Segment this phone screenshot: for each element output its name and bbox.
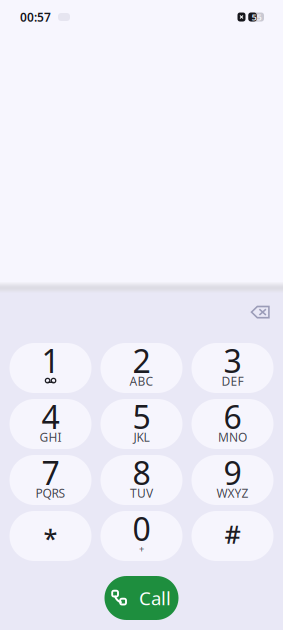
staticText: 4	[41, 395, 59, 438]
staticText: #	[224, 517, 240, 551]
button[interactable]: 0	[100, 511, 182, 561]
staticText: ABC	[129, 373, 153, 389]
staticText: 3	[223, 339, 241, 382]
staticText: 55	[251, 11, 261, 23]
staticText: PQRS	[35, 485, 65, 501]
staticText: 7	[41, 451, 59, 494]
button[interactable]: #	[191, 511, 273, 561]
button[interactable]: 2	[100, 343, 182, 393]
staticText: 2	[132, 339, 150, 382]
button[interactable]: 1	[9, 343, 91, 393]
button[interactable]: 6	[191, 399, 273, 449]
staticText: 5	[132, 395, 150, 438]
button[interactable]: 8	[100, 455, 182, 505]
staticText: Call	[139, 586, 171, 610]
staticText: 0	[132, 507, 150, 550]
staticText: WXYZ	[216, 485, 248, 501]
staticText: 8	[132, 451, 150, 494]
staticText: JKL	[133, 429, 149, 445]
staticText: 1	[41, 339, 59, 382]
button[interactable]: *	[9, 511, 91, 561]
staticText: 00:57	[20, 9, 51, 25]
staticText: 9	[223, 451, 241, 494]
staticText: 6	[223, 395, 241, 438]
staticText: *	[43, 521, 57, 555]
button[interactable]: Call	[104, 576, 178, 620]
button[interactable]: 7	[9, 455, 91, 505]
button[interactable]: 9	[191, 455, 273, 505]
staticText: TUV	[130, 485, 153, 501]
staticText: GHI	[39, 429, 61, 445]
button[interactable]: 5	[100, 399, 182, 449]
button[interactable]: 3	[191, 343, 273, 393]
button[interactable]: Delete	[239, 292, 281, 332]
staticText: MNO	[218, 429, 247, 445]
staticText: DEF	[221, 373, 243, 389]
staticText: +	[139, 543, 144, 555]
button[interactable]: 4	[9, 399, 91, 449]
